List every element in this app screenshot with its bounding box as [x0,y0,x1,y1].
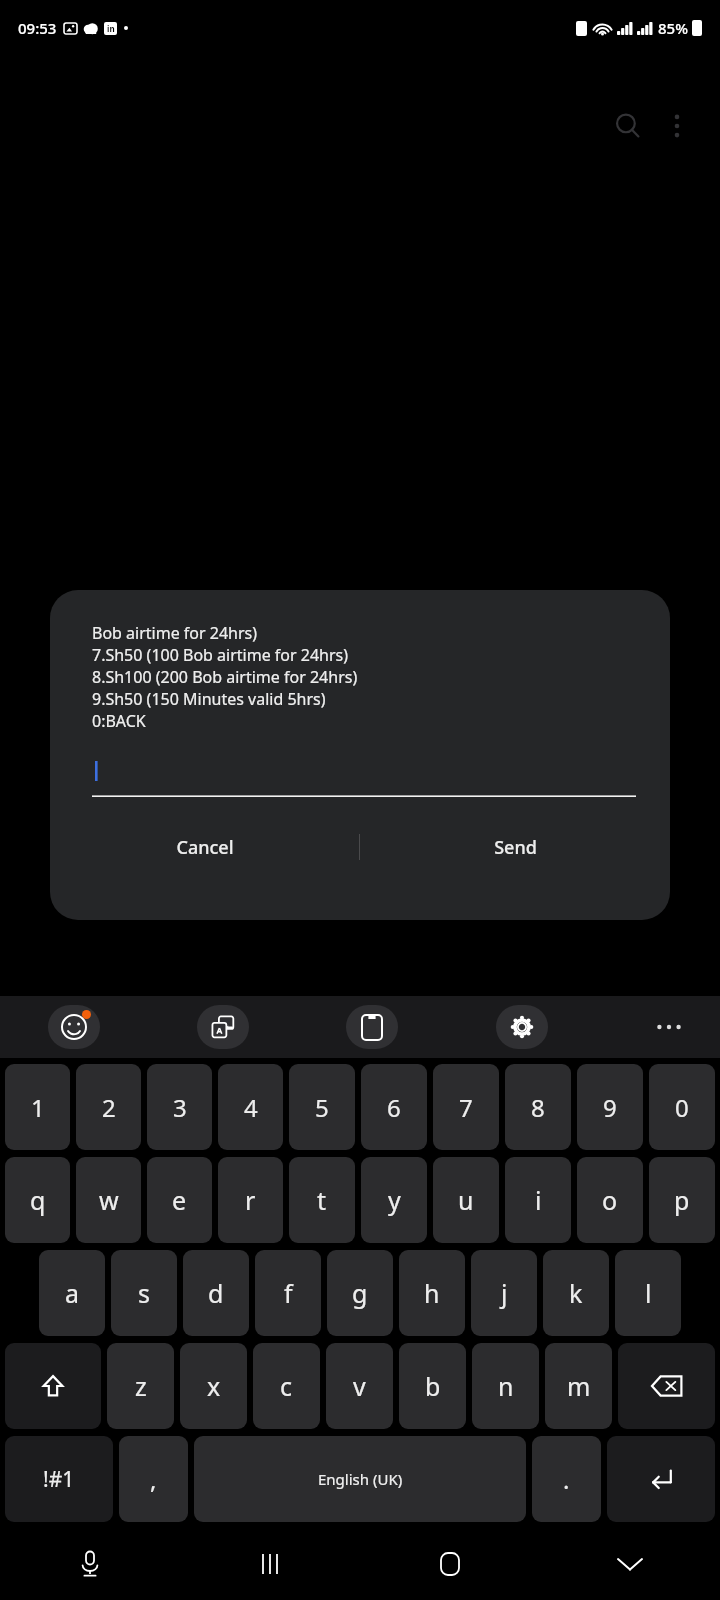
button[interactable]: m [545,1343,612,1429]
staticText: 0:BACK [92,710,146,732]
button[interactable]: . [532,1436,601,1522]
button[interactable]: More options [654,103,700,149]
button[interactable]: 8 [505,1064,571,1150]
button[interactable]: Settings [496,1005,548,1049]
button[interactable]: a [39,1250,105,1336]
staticText: v [353,1369,366,1403]
staticText: 09:53 [18,18,57,38]
staticText: 2 [102,1091,116,1124]
button[interactable]: Enter [607,1436,715,1522]
button[interactable]: y [361,1157,427,1243]
button[interactable]: s [111,1250,177,1336]
button[interactable]: 4 [218,1064,283,1150]
staticText: 85% [658,18,688,38]
button[interactable]: English (UK) [194,1436,526,1522]
button[interactable]: Search [602,100,654,152]
staticText: s [138,1276,150,1310]
button[interactable]: h [399,1250,465,1336]
button[interactable]: r [218,1157,283,1243]
button[interactable]: w [76,1157,141,1243]
staticText: o [602,1183,618,1217]
staticText: n [498,1369,514,1403]
staticText: . [563,1463,570,1496]
staticText: Bob airtime for 24hrs) [92,622,258,644]
button[interactable]: j [471,1250,537,1336]
button[interactable]: Recents [180,1528,360,1600]
staticText: , [150,1463,157,1496]
button[interactable]: q [5,1157,70,1243]
staticText: r [245,1183,256,1217]
staticText: x [207,1369,221,1403]
staticText: i [535,1183,542,1217]
button[interactable]: !#1 [5,1436,113,1522]
button[interactable]: k [543,1250,609,1336]
button[interactable]: Send [360,819,670,875]
button[interactable]: Backspace [618,1343,715,1429]
button[interactable]: p [649,1157,715,1243]
staticText: e [172,1183,187,1217]
button[interactable]: Home [360,1528,540,1600]
button[interactable]: Voice input [0,1528,180,1600]
button[interactable]: 7 [433,1064,499,1150]
staticText: 9.Sh50 (150 Minutes valid 5hrs) [92,688,326,710]
button[interactable]: i [505,1157,571,1243]
staticText: a [65,1276,80,1310]
staticText: q [30,1183,46,1217]
button[interactable]: l [615,1250,681,1336]
staticText: 7.Sh50 (100 Bob airtime for 24hrs) [92,644,349,666]
staticText: 8 [531,1091,545,1124]
button[interactable]: Cancel [50,819,359,875]
button[interactable]: x [180,1343,247,1429]
button[interactable]: 9 [577,1064,643,1150]
button[interactable]: 3 [147,1064,212,1150]
staticText: Cancel [176,835,234,860]
button[interactable]: 0 [649,1064,715,1150]
staticText: 8.Sh100 (200 Bob airtime for 24hrs) [92,666,358,688]
staticText: 7 [459,1091,473,1124]
button[interactable]: b [399,1343,466,1429]
button[interactable]: 1 [5,1064,70,1150]
staticText: c [280,1369,293,1403]
button[interactable]: n [472,1343,539,1429]
button[interactable]: , [119,1436,188,1522]
staticText: f [284,1276,293,1310]
button[interactable]: 2 [76,1064,141,1150]
staticText: 4 [244,1091,258,1124]
button[interactable]: 5 [289,1064,355,1150]
button[interactable]: Clipboard [346,1005,398,1049]
staticText: Send [494,835,537,860]
button[interactable]: Shift [5,1343,101,1429]
button[interactable]: f [255,1250,321,1336]
button[interactable]: z [107,1343,174,1429]
button[interactable]: o [577,1157,643,1243]
staticText: p [674,1183,690,1217]
staticText: 0 [675,1091,689,1124]
button[interactable]: d [183,1250,249,1336]
button[interactable]: v [326,1343,393,1429]
button[interactable]: c [253,1343,320,1429]
staticText: t [317,1183,327,1217]
button[interactable]: e [147,1157,212,1243]
staticText: d [208,1276,224,1310]
staticText: u [458,1183,474,1217]
staticText: 9 [603,1091,617,1124]
button[interactable]: Hide keyboard [540,1528,720,1600]
button[interactable]: u [433,1157,499,1243]
button[interactable]: Emoji [48,1005,100,1049]
staticText: 6 [387,1091,401,1124]
staticText: j [501,1276,508,1310]
staticText: w [99,1183,119,1217]
button[interactable]: 6 [361,1064,427,1150]
staticText: 5 [315,1091,329,1124]
staticText: h [424,1276,440,1310]
button[interactable]: g [327,1250,393,1336]
button[interactable]: t [289,1157,355,1243]
staticText: z [135,1369,147,1403]
staticText: l [645,1276,652,1310]
button[interactable]: Translate [197,1005,249,1049]
button[interactable]: More [646,1004,692,1050]
staticText: 3 [173,1091,187,1124]
staticText: g [352,1276,368,1310]
staticText: in [107,23,115,34]
staticText: b [425,1369,441,1403]
